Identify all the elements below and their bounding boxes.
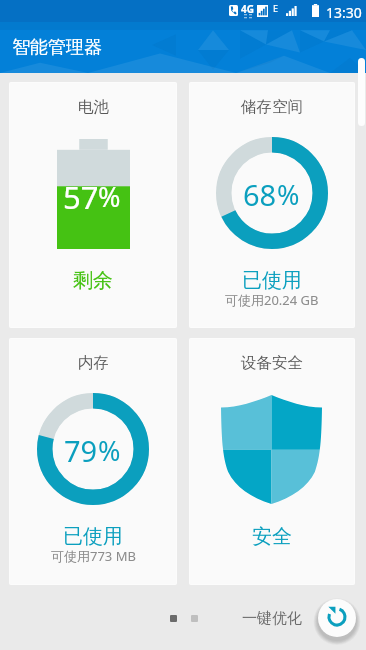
staticText: %	[277, 176, 300, 213]
staticText: 可使用20.24 GB	[225, 291, 319, 309]
staticText: 储存空间	[241, 97, 303, 117]
button[interactable]: 储存空间	[189, 82, 355, 328]
staticText: 设备安全	[241, 353, 303, 373]
button[interactable]: Optimize now	[318, 599, 356, 637]
button[interactable]: 内存	[9, 338, 177, 585]
staticText: E	[273, 2, 279, 14]
staticText: 57	[63, 176, 99, 218]
staticText: %	[98, 178, 121, 215]
button[interactable]: 一键优化	[242, 609, 302, 628]
staticText: 内存	[78, 353, 109, 373]
staticText: 一键优化	[242, 609, 302, 628]
button[interactable]: 电池	[9, 82, 177, 328]
staticText: 已使用	[242, 268, 302, 293]
staticText: 智能管理器	[12, 36, 102, 59]
staticText: 电池	[78, 97, 109, 117]
staticText: %	[98, 432, 121, 469]
staticText: 4G	[241, 2, 254, 16]
staticText: 68	[243, 175, 277, 214]
staticText: 可使用773 MB	[51, 547, 136, 565]
staticText: 剩余	[73, 268, 113, 293]
button[interactable]: 设备安全	[189, 338, 355, 585]
staticText: 已使用	[63, 524, 123, 549]
staticText: 13:30	[326, 3, 362, 22]
staticText: 安全	[252, 524, 292, 549]
staticText: 79	[64, 431, 98, 470]
